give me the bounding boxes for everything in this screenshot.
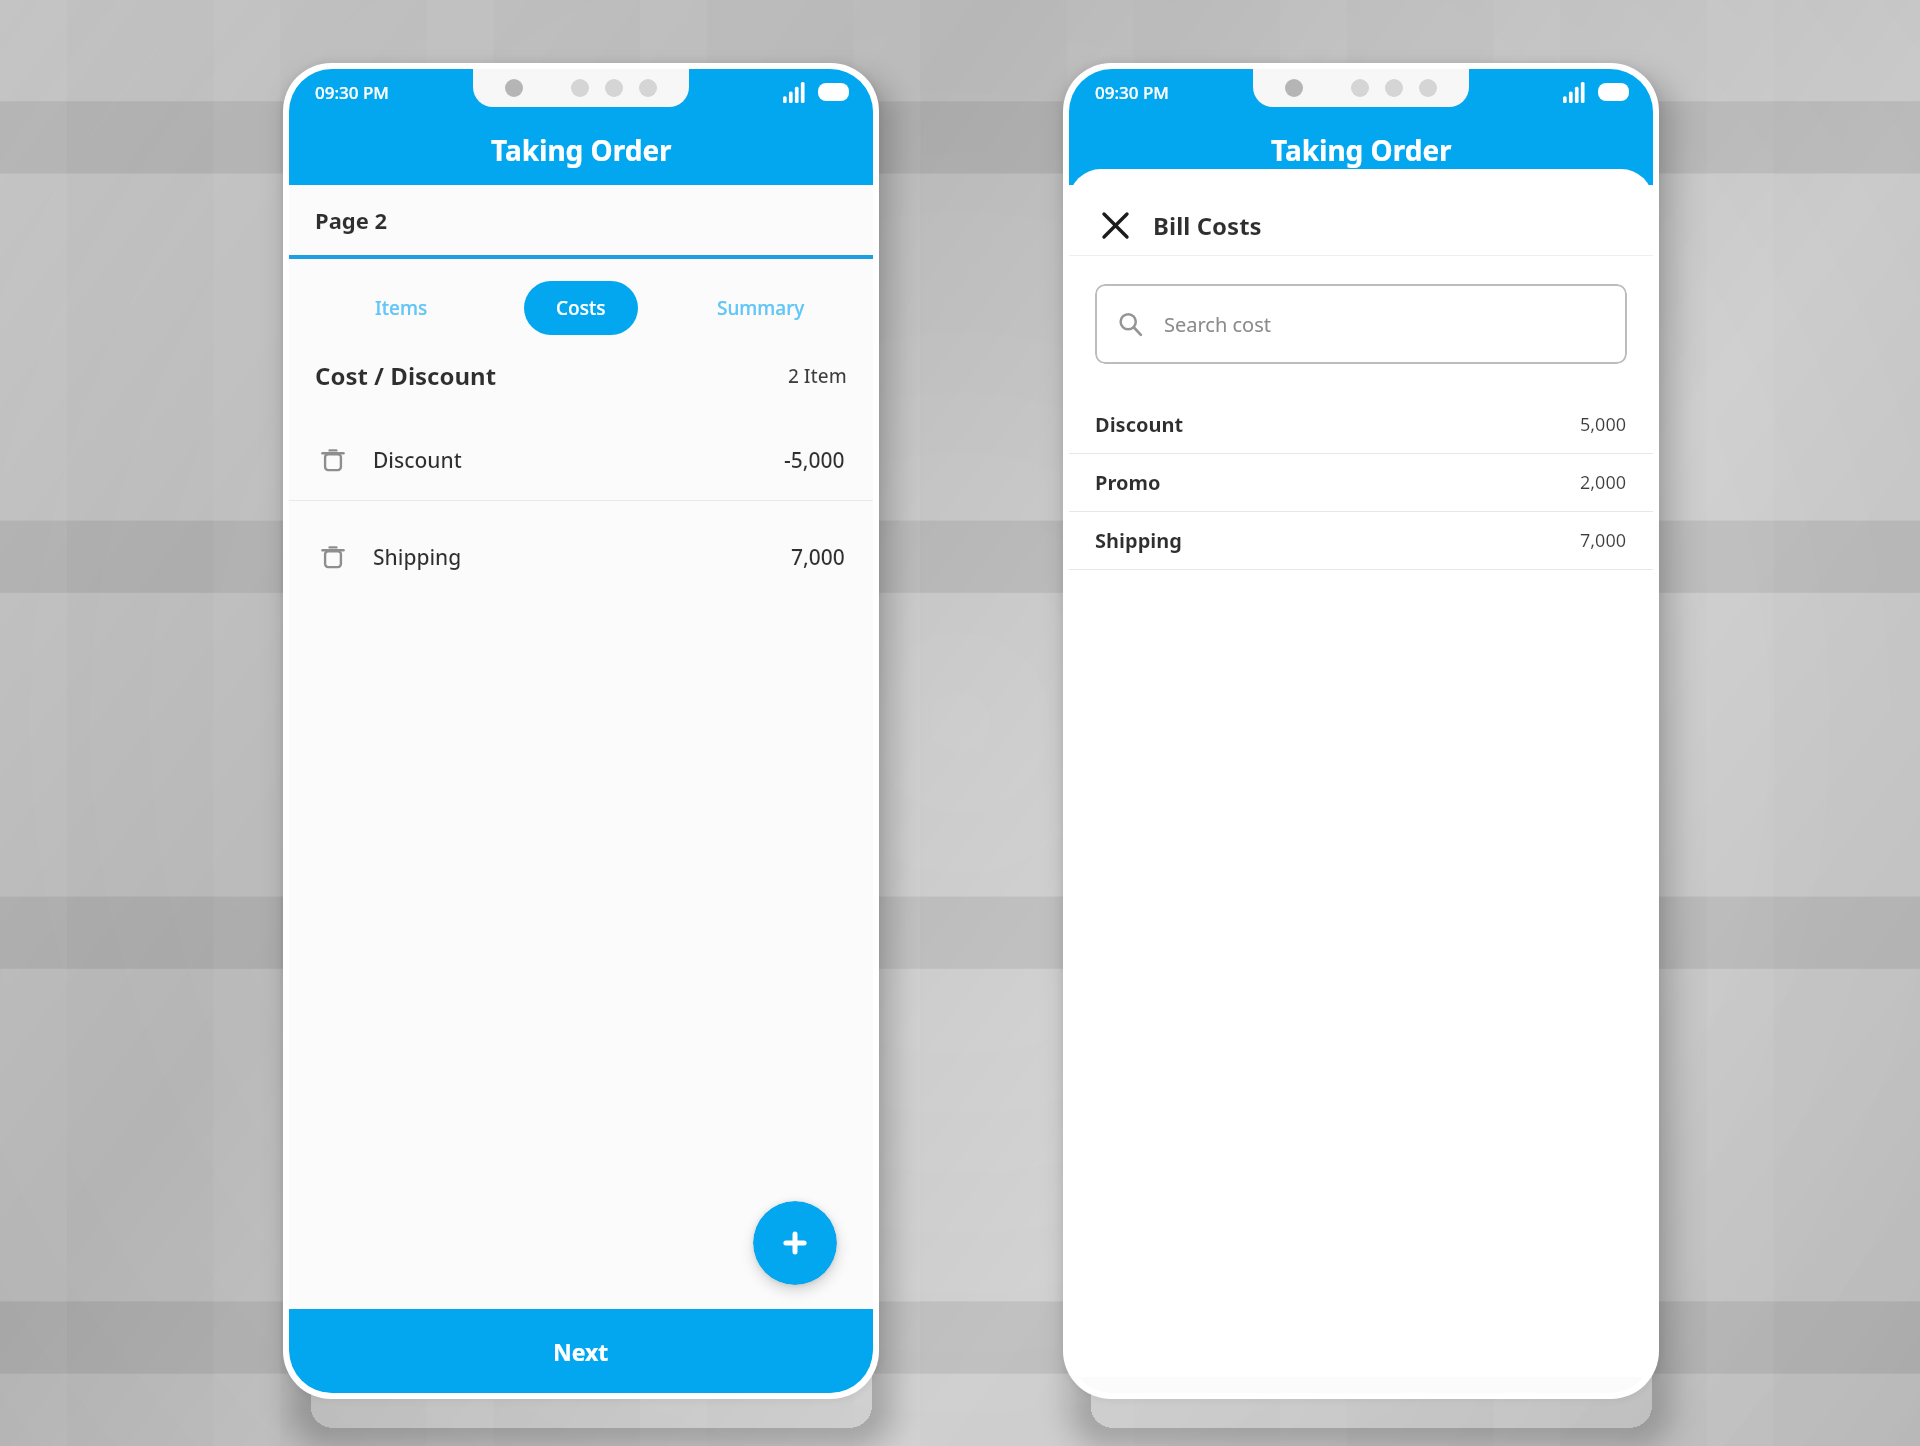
button[interactable]: Next — [289, 1309, 873, 1393]
button[interactable]: Shipping — [289, 517, 873, 597]
staticText: Promo — [1095, 469, 1161, 496]
staticText: -5,000 — [784, 446, 845, 475]
staticText: Shipping — [373, 543, 462, 572]
staticText: Next — [553, 1336, 609, 1367]
staticText: 09:30 PM — [1095, 81, 1169, 104]
staticText: Taking Order — [491, 131, 672, 169]
staticText: 7,000 — [791, 543, 845, 572]
staticText: Discount — [1095, 411, 1184, 438]
staticText: Taking Order — [1271, 131, 1452, 169]
button[interactable]: Summary — [685, 281, 837, 335]
button[interactable]: Close — [1099, 195, 1653, 255]
staticText: 7,000 — [1580, 528, 1627, 553]
staticText: Items — [375, 295, 428, 321]
button[interactable]: Shipping — [1069, 512, 1653, 570]
button[interactable]: Search cost — [1095, 284, 1627, 364]
button[interactable]: Discount — [1069, 396, 1653, 454]
staticText: 2,000 — [1580, 470, 1627, 495]
button[interactable]: Discount — [289, 420, 873, 500]
staticText: Shipping — [1095, 527, 1182, 554]
staticText: Summary — [717, 295, 805, 321]
staticText: 5,000 — [1580, 412, 1627, 437]
button[interactable]: Items — [343, 281, 460, 335]
other: Close — [1099, 209, 1131, 241]
button[interactable]: Promo — [1069, 454, 1653, 512]
staticText: Page 2 — [315, 205, 388, 235]
staticText: Discount — [373, 446, 462, 475]
button[interactable]: Costs — [524, 281, 638, 335]
staticText: 2 Item — [788, 363, 847, 389]
staticText: Costs — [556, 295, 606, 321]
staticText: Cost / Discount — [315, 359, 497, 392]
staticText: Search cost — [1164, 311, 1271, 338]
staticText: 09:30 PM — [315, 81, 389, 104]
button[interactable]: Add cost — [753, 1201, 837, 1285]
staticText: Bill Costs — [1153, 209, 1262, 242]
